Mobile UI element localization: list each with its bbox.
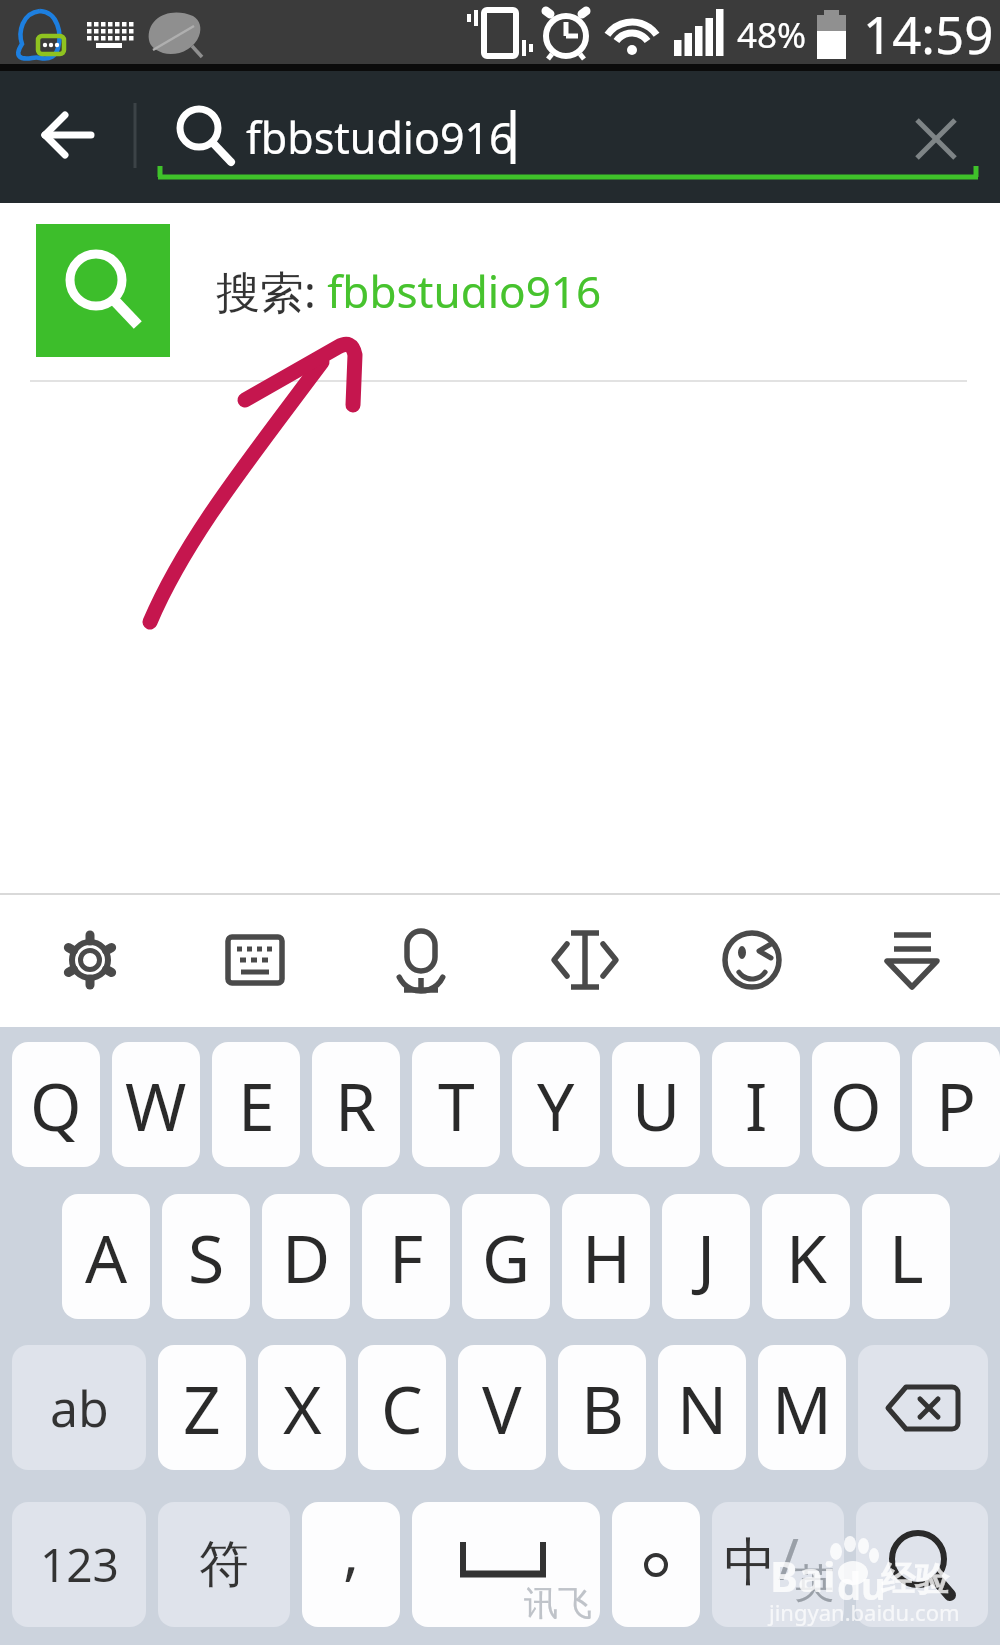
staticText: 搜索: fbbstudio916 <box>216 261 602 321</box>
staticText: 48% <box>737 11 807 59</box>
button[interactable] <box>856 1502 988 1627</box>
staticText: X <box>283 1363 322 1453</box>
staticText: K <box>786 1212 827 1302</box>
button[interactable]: C <box>358 1345 446 1470</box>
staticText: / <box>778 1520 799 1596</box>
button[interactable]: A <box>62 1194 150 1319</box>
button[interactable]: F <box>362 1194 450 1319</box>
button[interactable] <box>707 915 797 1005</box>
button[interactable]: Z <box>158 1345 246 1470</box>
staticText: J <box>697 1212 716 1302</box>
staticText: jingyan.baidu.com <box>769 1597 960 1627</box>
button[interactable]: N <box>658 1345 746 1470</box>
staticText: Y <box>537 1060 575 1150</box>
staticText: G <box>482 1212 531 1302</box>
staticText: 中 <box>724 1530 776 1596</box>
staticText: H <box>582 1212 631 1302</box>
button[interactable]: 中 <box>712 1502 844 1627</box>
staticText: S <box>188 1212 225 1302</box>
staticText: 符 <box>199 1533 249 1596</box>
staticText: M <box>772 1363 832 1453</box>
staticText: R <box>335 1060 377 1150</box>
button[interactable]: 符 <box>158 1502 290 1627</box>
button[interactable]: D <box>262 1194 350 1319</box>
button[interactable] <box>45 915 135 1005</box>
button[interactable]: , <box>302 1502 400 1627</box>
staticText: I <box>745 1060 768 1150</box>
staticText: 123 <box>40 1533 119 1596</box>
button[interactable]: 讯飞 <box>412 1502 600 1627</box>
staticText: , <box>343 1510 360 1592</box>
button[interactable]: W <box>112 1042 200 1167</box>
button[interactable] <box>376 915 466 1005</box>
button[interactable]: R <box>312 1042 400 1167</box>
staticText: B <box>581 1363 624 1453</box>
button[interactable]: Q <box>12 1042 100 1167</box>
button[interactable]: P <box>912 1042 1000 1167</box>
staticText: Z <box>183 1363 221 1453</box>
button[interactable]: I <box>712 1042 800 1167</box>
staticText: W <box>125 1060 187 1150</box>
staticText: 14:59 <box>863 0 994 63</box>
button[interactable] <box>20 89 116 181</box>
staticText: N <box>677 1363 728 1453</box>
button[interactable] <box>867 915 957 1005</box>
staticText: Q <box>30 1060 82 1150</box>
staticText: Bai <box>770 1547 836 1604</box>
button[interactable]: S <box>162 1194 250 1319</box>
staticText: P <box>936 1060 976 1150</box>
button[interactable]: B <box>558 1345 646 1470</box>
button[interactable]: G <box>462 1194 550 1319</box>
button[interactable] <box>896 99 976 179</box>
staticText: du <box>837 1559 886 1611</box>
staticText: A <box>85 1212 128 1302</box>
staticText: E <box>238 1060 275 1150</box>
button[interactable]: M <box>758 1345 846 1470</box>
staticText: V <box>482 1363 522 1453</box>
button[interactable] <box>612 1502 700 1627</box>
staticText: D <box>282 1212 331 1302</box>
staticText: 英 <box>794 1558 834 1608</box>
staticText: L <box>889 1212 924 1302</box>
staticText: U <box>632 1060 681 1150</box>
staticText: 经验 <box>881 1558 949 1601</box>
staticText: O <box>830 1060 882 1150</box>
button[interactable]: T <box>412 1042 500 1167</box>
staticText: ab <box>50 1374 109 1442</box>
button[interactable]: O <box>812 1042 900 1167</box>
button[interactable]: U <box>612 1042 700 1167</box>
staticText: T <box>438 1060 475 1150</box>
button[interactable]: E <box>212 1042 300 1167</box>
button[interactable]: J <box>662 1194 750 1319</box>
staticText: fbbstudio916 <box>246 108 514 167</box>
button[interactable]: V <box>458 1345 546 1470</box>
button[interactable]: L <box>862 1194 950 1319</box>
staticText: 讯飞 <box>524 1582 592 1625</box>
button[interactable] <box>540 915 630 1005</box>
staticText: F <box>389 1212 424 1302</box>
button[interactable] <box>210 915 300 1005</box>
button[interactable]: 123 <box>12 1502 146 1627</box>
button[interactable]: ab <box>12 1345 146 1470</box>
button[interactable]: Y <box>512 1042 600 1167</box>
button[interactable] <box>858 1345 988 1470</box>
button[interactable] <box>36 224 170 357</box>
staticText: C <box>381 1363 423 1453</box>
button[interactable]: H <box>562 1194 650 1319</box>
button[interactable]: K <box>762 1194 850 1319</box>
button[interactable]: X <box>258 1345 346 1470</box>
